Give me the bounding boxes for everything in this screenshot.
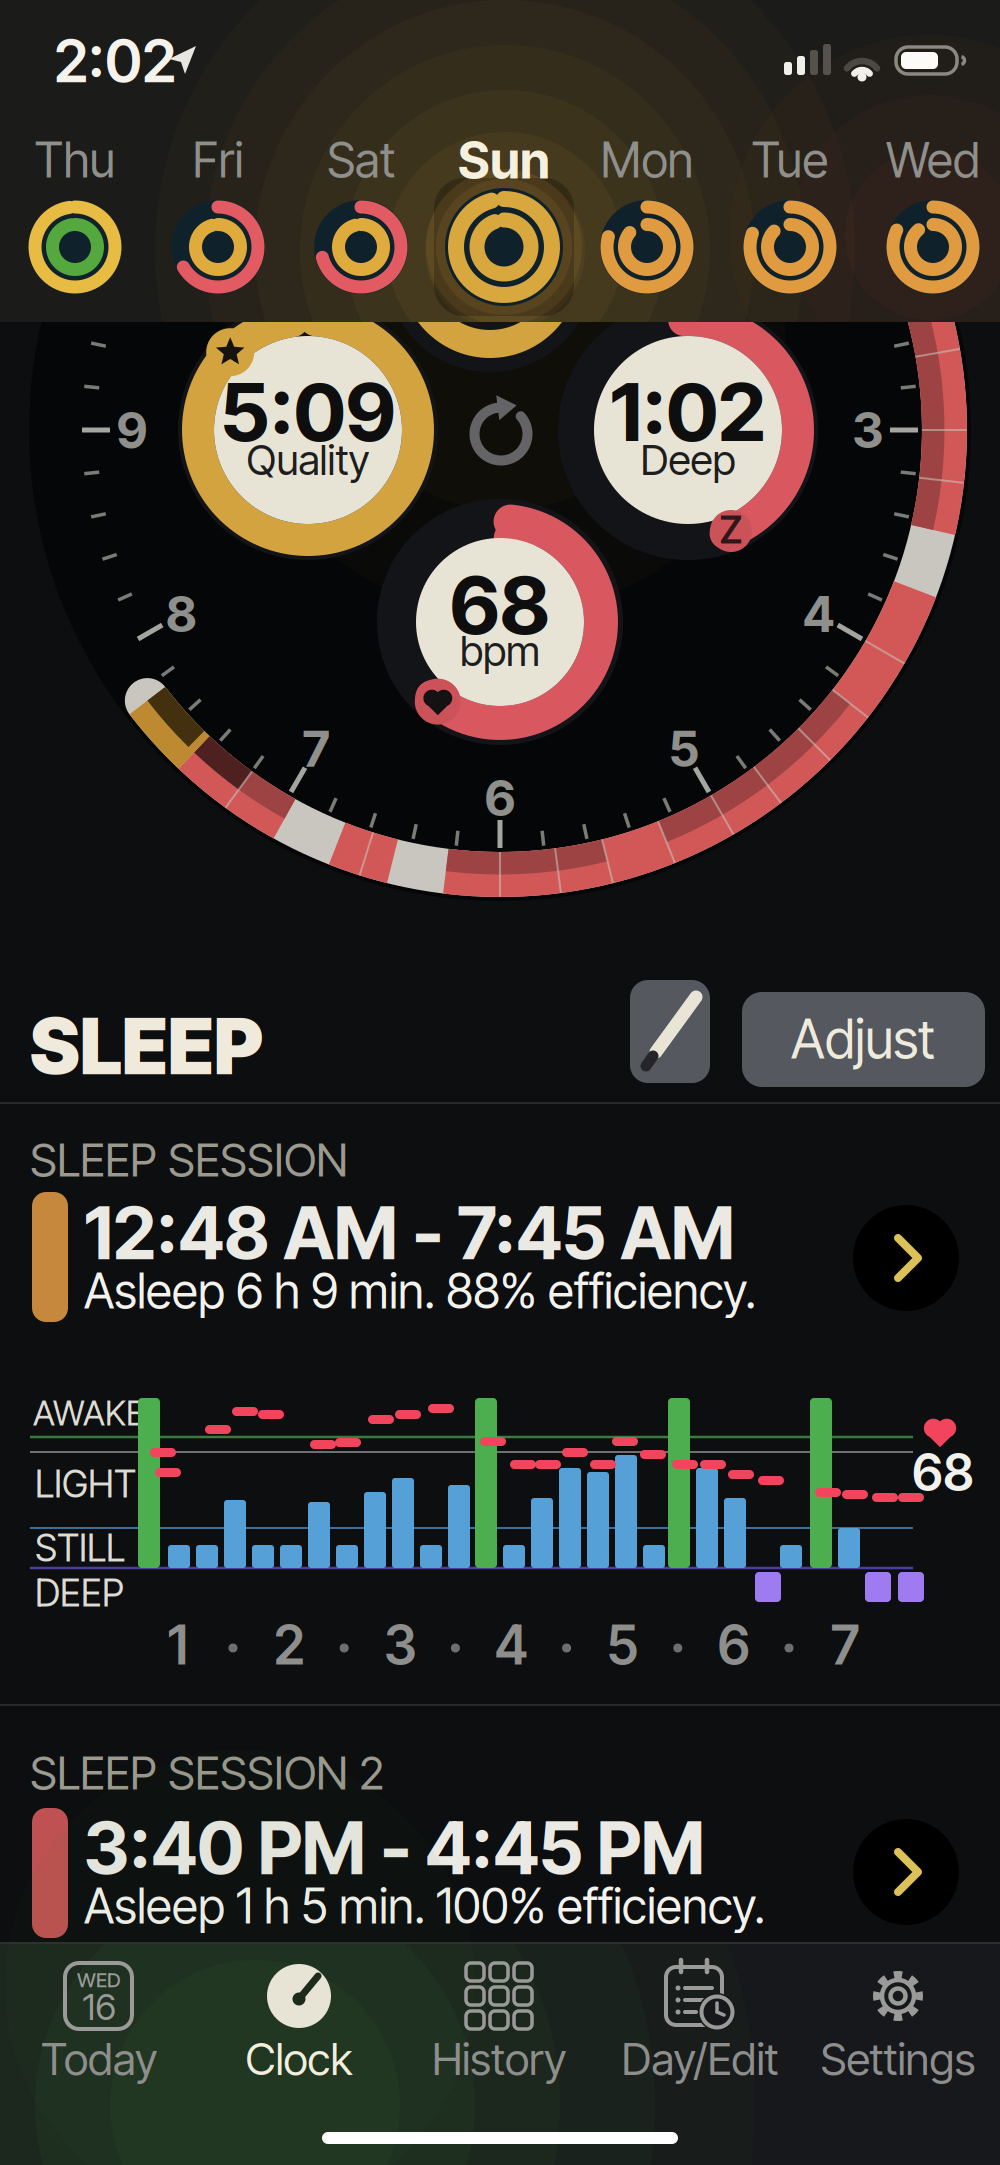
staticText: 5	[669, 720, 699, 778]
staticText: Z	[719, 508, 742, 552]
staticText: Thu	[34, 132, 115, 188]
staticText: 4	[495, 1613, 529, 1676]
staticText: 3	[384, 1613, 417, 1676]
staticText: STILL	[35, 1526, 125, 1570]
staticText: Mon	[600, 132, 693, 188]
staticText: 2:02	[54, 26, 176, 96]
staticText: 5	[607, 1613, 639, 1676]
staticText: WED	[77, 1968, 121, 1992]
staticText: 10	[155, 217, 207, 275]
staticText: 2	[274, 1613, 305, 1676]
staticText: 1:02	[610, 365, 766, 459]
staticText: Asleep 1 h 5 min. 100% efficiency.	[84, 1878, 765, 1934]
staticText: Sun	[458, 130, 550, 190]
staticText: SLEEP SESSION	[30, 1133, 348, 1187]
staticText: Day/Edit	[621, 2033, 778, 2085]
staticText: Sat	[327, 132, 395, 188]
staticText: SLEEP	[30, 1000, 263, 1092]
staticText: DEEP	[35, 1571, 124, 1615]
staticText: AWAKE	[33, 1393, 145, 1433]
staticText: 3:40 PM - 4:45 PM	[84, 1805, 705, 1890]
staticText: 12:48 AM - 7:45 AM	[84, 1190, 735, 1275]
staticText: 8	[166, 585, 197, 643]
staticText: 7	[831, 1613, 860, 1676]
staticText: Clock	[245, 2033, 352, 2085]
staticText: Today	[41, 2033, 157, 2085]
staticText: 2	[804, 217, 833, 275]
staticText: bpm	[460, 627, 540, 675]
staticText: Settings	[820, 2033, 975, 2085]
staticText: SLEEP SESSION 2	[30, 1746, 384, 1800]
staticText: Tue	[751, 132, 828, 188]
staticText: 7	[302, 720, 329, 778]
staticText: 9	[116, 401, 147, 459]
staticText: 4	[803, 585, 835, 643]
staticText: 68	[912, 1442, 974, 1502]
staticText: 68	[449, 558, 550, 652]
staticText: 16	[82, 1986, 115, 2028]
staticText: History	[432, 2033, 566, 2085]
staticText: 1	[167, 1613, 188, 1676]
staticText: Adjust	[791, 1007, 935, 1070]
staticText: Asleep 6 h 9 min. 88% efficiency.	[84, 1263, 756, 1319]
staticText: Wed	[886, 132, 980, 188]
staticText: 6	[484, 769, 515, 827]
staticText: 6	[717, 1613, 750, 1676]
staticText: Deep	[640, 436, 735, 484]
staticText: 3	[852, 401, 883, 459]
staticText: Quality	[246, 436, 369, 484]
staticText: 5:09	[220, 365, 395, 459]
staticText: LIGHT	[35, 1462, 136, 1506]
staticText: Fri	[192, 132, 243, 188]
